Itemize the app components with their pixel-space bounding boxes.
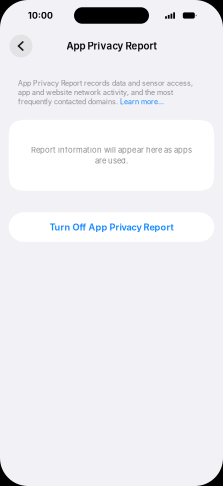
button[interactable]: Learn more... [120, 97, 164, 106]
staticText: are used. [95, 156, 128, 165]
button[interactable]: Back [9, 34, 32, 57]
staticText: Turn Off App Privacy Report [49, 222, 173, 233]
staticText: app and website network activity, and th… [18, 88, 173, 97]
staticText: App Privacy Report records data and sens… [18, 79, 193, 87]
staticText: 10:00 [28, 10, 53, 21]
staticText: App Privacy Report [66, 40, 156, 52]
button[interactable]: Turn Off App Privacy Report [9, 212, 214, 242]
staticText: Learn more... [120, 97, 164, 106]
staticText: Report information will appear here as a… [31, 145, 192, 155]
staticText: frequently contacted domains. [18, 97, 120, 106]
